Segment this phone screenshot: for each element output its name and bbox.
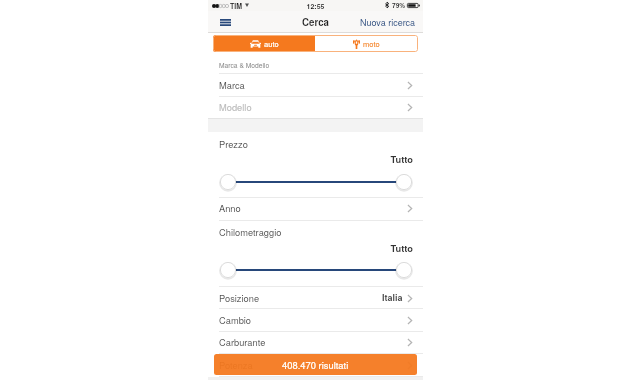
staticText: Posizione — [219, 291, 260, 304]
staticText: TIM — [230, 1, 243, 11]
button[interactable]: Marca — [208, 74, 423, 96]
staticText: Modello — [219, 100, 252, 113]
button[interactable]: auto — [213, 35, 315, 52]
staticText: 408.470 risultati — [282, 358, 349, 371]
staticText: Marca — [219, 78, 245, 91]
staticText: Anno — [219, 201, 241, 214]
button[interactable]: Posizione — [208, 287, 423, 309]
staticText: Cambio — [219, 313, 252, 326]
button[interactable]: Potenza — [208, 354, 423, 377]
staticText: 12:55 — [208, 1, 423, 11]
button[interactable]: Anno — [208, 197, 423, 220]
button[interactable]: Menu — [215, 11, 235, 33]
button[interactable]: moto — [315, 35, 418, 52]
button[interactable]: Modello — [208, 96, 423, 118]
staticText: Tutto — [208, 242, 413, 255]
staticText: Cerca — [208, 15, 423, 29]
staticText: Carburante — [219, 335, 266, 348]
staticText: moto — [363, 38, 380, 49]
staticText: Marca & Modello — [219, 60, 270, 70]
button[interactable]: Nuova ricerca — [360, 16, 416, 29]
button[interactable]: 408.470 risultati — [214, 354, 417, 375]
staticText: Italia — [382, 291, 403, 304]
staticText: Prezzo — [219, 137, 248, 150]
staticText: Tutto — [208, 153, 413, 166]
button[interactable]: Carburante — [208, 331, 423, 353]
staticText: 79% — [392, 1, 406, 10]
staticText: Nuova ricerca — [360, 16, 416, 29]
button[interactable]: Cambio — [208, 309, 423, 331]
staticText: auto — [264, 38, 279, 49]
staticText: Chilometraggio — [219, 225, 282, 238]
